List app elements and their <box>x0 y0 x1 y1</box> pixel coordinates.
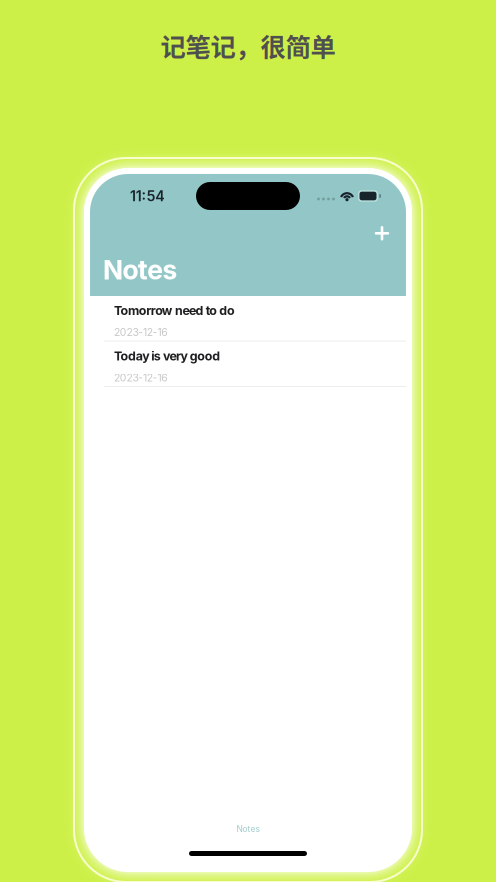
staticText: 记笔记，很简单 <box>160 27 335 64</box>
button[interactable]: Today is very good <box>90 341 406 387</box>
staticText: 2023-12-16 <box>114 326 167 339</box>
staticText: Tomorrow need to do <box>114 303 235 318</box>
button[interactable]: New note <box>365 221 399 245</box>
staticText: 11:54 <box>130 187 164 204</box>
staticText: Notes <box>236 824 259 834</box>
button[interactable]: Notes <box>90 817 406 841</box>
staticText: Notes <box>103 254 178 286</box>
staticText: 2023-12-16 <box>114 371 167 384</box>
staticText: Today is very good <box>114 348 220 363</box>
button[interactable]: Tomorrow need to do <box>90 296 406 341</box>
